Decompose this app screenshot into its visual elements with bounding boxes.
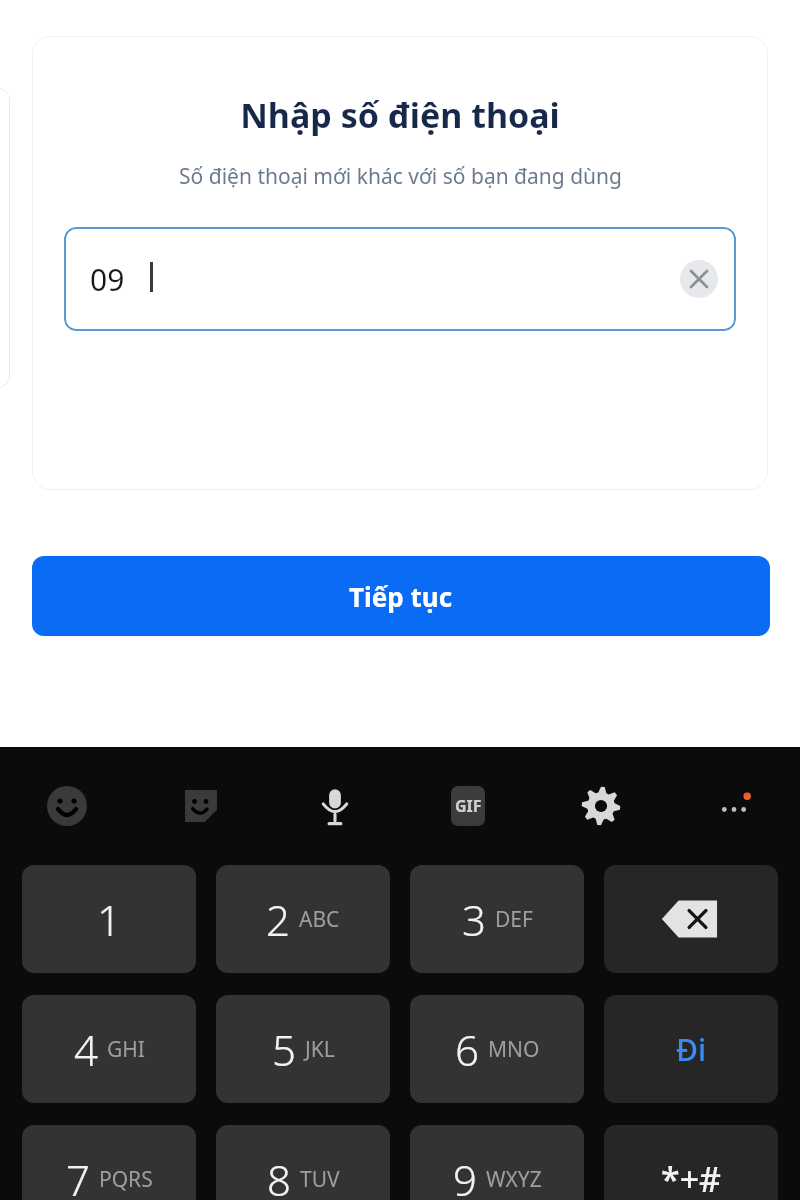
button[interactable]: Settings <box>534 747 667 865</box>
button[interactable]: GIF <box>401 747 534 865</box>
button[interactable]: Emoji <box>0 747 134 865</box>
button[interactable]: 5 <box>216 995 390 1103</box>
button[interactable]: 2 <box>216 865 390 973</box>
staticText: 1 <box>97 891 121 948</box>
staticText: Đi <box>676 1029 707 1070</box>
staticText: Nhập số điện thoại <box>240 92 560 138</box>
button[interactable]: *+# <box>604 1125 778 1200</box>
staticText: GIF <box>455 795 482 817</box>
staticText: 2 <box>266 891 290 948</box>
staticText: JKL <box>305 1035 335 1064</box>
staticText: Số điện thoại mới khác với số bạn đang d… <box>179 162 622 191</box>
staticText: PQRS <box>99 1165 153 1194</box>
button[interactable]: Stickers <box>134 747 268 865</box>
staticText: Tiếp tục <box>349 579 453 614</box>
button[interactable]: 1 <box>22 865 196 973</box>
staticText: 7 <box>66 1151 90 1200</box>
staticText: WXYZ <box>486 1165 542 1194</box>
staticText: *+# <box>661 1156 722 1200</box>
button[interactable]: More options <box>667 747 800 865</box>
button[interactable]: 4 <box>22 995 196 1103</box>
staticText: 4 <box>74 1021 98 1078</box>
button[interactable]: Voice input <box>268 747 401 865</box>
staticText: 8 <box>267 1151 291 1200</box>
button[interactable]: 09 <box>64 227 736 331</box>
staticText: TUV <box>300 1165 340 1194</box>
staticText: ABC <box>299 905 340 934</box>
button[interactable]: 3 <box>410 865 584 973</box>
staticText: MNO <box>488 1035 540 1064</box>
staticText: GHI <box>107 1035 145 1064</box>
staticText: 09 <box>90 259 125 300</box>
button[interactable]: Backspace <box>604 865 778 973</box>
staticText: 6 <box>455 1021 479 1078</box>
button[interactable]: 8 <box>216 1125 390 1200</box>
staticText: 9 <box>453 1151 477 1200</box>
staticText: 3 <box>462 891 486 948</box>
button[interactable]: 7 <box>22 1125 196 1200</box>
button[interactable]: Clear <box>680 260 718 298</box>
button[interactable]: Đi <box>604 995 778 1103</box>
staticText: 5 <box>272 1021 296 1078</box>
button[interactable]: 9 <box>410 1125 584 1200</box>
button[interactable]: Tiếp tục <box>32 556 770 636</box>
staticText: DEF <box>495 905 533 934</box>
button[interactable]: 6 <box>410 995 584 1103</box>
